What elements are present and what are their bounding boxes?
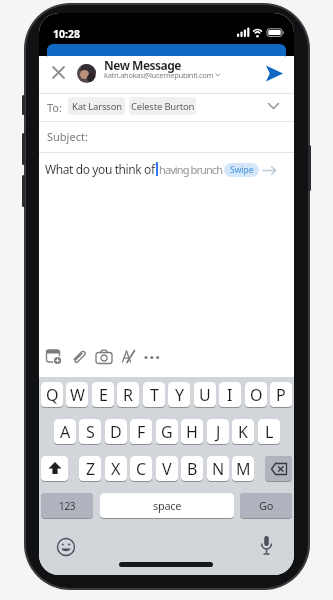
button[interactable]: X — [105, 456, 127, 481]
button[interactable]: Y — [168, 382, 190, 407]
staticText: M — [236, 458, 251, 480]
staticText: R — [123, 384, 133, 406]
button[interactable]: U — [194, 382, 216, 407]
button[interactable]: E — [92, 382, 114, 407]
staticText: A — [60, 421, 70, 443]
button[interactable]: T — [143, 382, 165, 407]
staticText: katri.ahokas@lucernepubintl.com — [104, 70, 214, 80]
button[interactable] — [57, 538, 75, 556]
button[interactable]: A — [54, 419, 76, 444]
staticText: J — [216, 421, 221, 443]
button[interactable]: L — [258, 419, 280, 444]
staticText: 123 — [59, 499, 76, 513]
staticText: Q — [46, 384, 59, 406]
button[interactable]: F — [130, 419, 152, 444]
button[interactable]: H — [181, 419, 203, 444]
staticText: To: — [47, 100, 62, 115]
staticText: X — [111, 458, 121, 480]
button[interactable] — [46, 349, 196, 365]
button[interactable]: N — [207, 456, 229, 481]
staticText: K — [238, 421, 248, 443]
staticText: E — [99, 384, 108, 406]
staticText: V — [162, 458, 172, 480]
button[interactable] — [266, 65, 283, 82]
button[interactable]: M — [232, 456, 254, 481]
button[interactable]: W — [66, 382, 88, 407]
staticText: H — [186, 421, 198, 443]
button[interactable]: Kat Larsson — [68, 97, 125, 115]
staticText: D — [110, 421, 122, 443]
button[interactable]: J — [207, 419, 229, 444]
button[interactable]: Swipe — [224, 163, 259, 177]
staticText: S — [86, 421, 95, 443]
staticText: Y — [175, 384, 184, 406]
staticText: F — [137, 421, 146, 443]
button[interactable] — [260, 536, 273, 556]
staticText: I — [227, 384, 233, 406]
staticText: P — [276, 384, 286, 406]
button[interactable]: space — [100, 493, 234, 518]
button[interactable] — [41, 456, 68, 481]
staticText: G — [161, 421, 173, 443]
button[interactable]: I — [219, 382, 241, 407]
staticText: having brunch — [159, 162, 223, 177]
button[interactable]: D — [105, 419, 127, 444]
button[interactable]: V — [156, 456, 178, 481]
staticText: O — [250, 384, 263, 406]
staticText: C — [136, 458, 146, 480]
button[interactable]: B — [181, 456, 203, 481]
staticText: U — [199, 384, 211, 406]
staticText: Swipe — [230, 164, 254, 176]
button[interactable]: G — [156, 419, 178, 444]
button[interactable]: 123 — [41, 493, 93, 518]
button[interactable]: C — [130, 456, 152, 481]
button[interactable]: Q — [41, 382, 63, 407]
button[interactable]: O — [245, 382, 267, 407]
button[interactable]: S — [79, 419, 101, 444]
staticText: B — [187, 458, 198, 480]
staticText: L — [265, 421, 274, 443]
button[interactable]: K — [232, 419, 254, 444]
staticText: N — [212, 458, 224, 480]
staticText: T — [150, 384, 159, 406]
staticText: Z — [86, 458, 95, 480]
staticText: Go — [259, 498, 274, 513]
staticText: W — [70, 384, 85, 406]
staticText: space — [153, 498, 182, 513]
staticText: Kat Larsson — [72, 100, 122, 113]
staticText: New Message — [104, 57, 182, 73]
staticText: 10:28 — [53, 27, 80, 41]
button[interactable] — [265, 456, 292, 481]
staticText: Celeste Burton — [131, 100, 195, 113]
staticText: What do you think of — [45, 161, 155, 177]
button[interactable]: Go — [240, 493, 292, 518]
button[interactable]: Celeste Burton — [129, 97, 196, 115]
button[interactable]: P — [270, 382, 292, 407]
button[interactable] — [53, 67, 64, 78]
button[interactable]: Z — [79, 456, 101, 481]
button[interactable]: R — [117, 382, 139, 407]
staticText: Subject: — [47, 129, 88, 144]
